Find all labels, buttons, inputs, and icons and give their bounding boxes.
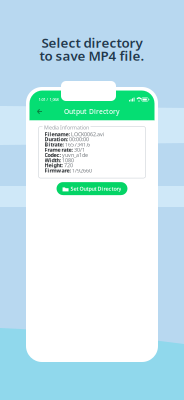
staticText: 1657341.6 <box>65 141 90 148</box>
button[interactable]: Back <box>32 104 46 118</box>
staticText: to save MP4 file. <box>39 47 144 64</box>
staticText: 1/92660 <box>72 167 92 174</box>
staticText: LOCK0062.avi <box>71 131 104 138</box>
staticText: 1080 <box>62 157 74 164</box>
staticText: Filename: <box>44 131 69 138</box>
button[interactable]: Set Output Directory <box>56 182 127 195</box>
staticText: Media Information <box>44 124 89 131</box>
staticText: Frame rate: <box>44 146 72 153</box>
staticText: Output Directory <box>64 107 120 116</box>
staticText: Set Output Directory <box>70 185 121 192</box>
staticText: 720 <box>64 162 73 169</box>
staticText: Firmware: <box>44 167 70 174</box>
staticText: Codec: <box>44 151 60 158</box>
staticText: yuvn_a1de <box>62 151 88 158</box>
staticText: 00:00:00 <box>69 136 89 143</box>
staticText: Height: <box>44 162 62 169</box>
staticText: 30/1 <box>74 146 85 153</box>
staticText: Bitrate: <box>44 141 63 148</box>
staticText: Duration: <box>44 136 67 143</box>
staticText: Width: <box>44 157 60 164</box>
staticText: 1:01 / 1,068 <box>38 97 58 102</box>
staticText: Select directory <box>41 34 142 51</box>
